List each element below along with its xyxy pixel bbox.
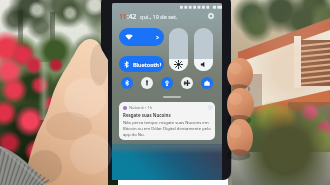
button[interactable]: Location — [161, 77, 173, 89]
button[interactable]: Airplane mode — [181, 77, 193, 89]
staticText: Nubank • 1h — [129, 105, 153, 110]
button[interactable]: Home — [201, 77, 213, 89]
button[interactable]: Expand notification — [208, 105, 213, 110]
button[interactable]: Wi-Fi — [119, 28, 164, 46]
button[interactable]: Settings — [207, 12, 215, 20]
staticText: Bluetooth — [133, 61, 160, 68]
button[interactable]: Flashlight — [141, 77, 153, 89]
button[interactable]: Nubank • 1h — [119, 102, 215, 140]
staticText: Resgate suas Nucoins — [123, 112, 171, 118]
staticText: 11 — [119, 12, 127, 20]
button[interactable]: Bluetooth — [119, 56, 164, 72]
button[interactable]: Slider — [169, 28, 188, 71]
button[interactable]: Expand shade — [163, 96, 181, 98]
staticText: Não perca tempo: resgate suas Nucoins em… — [123, 120, 213, 138]
staticText: qui., 19 de set. — [140, 13, 178, 20]
button[interactable]: Slider — [194, 28, 213, 71]
staticText: :42 — [127, 12, 137, 20]
button[interactable]: Bluetooth — [121, 77, 133, 89]
